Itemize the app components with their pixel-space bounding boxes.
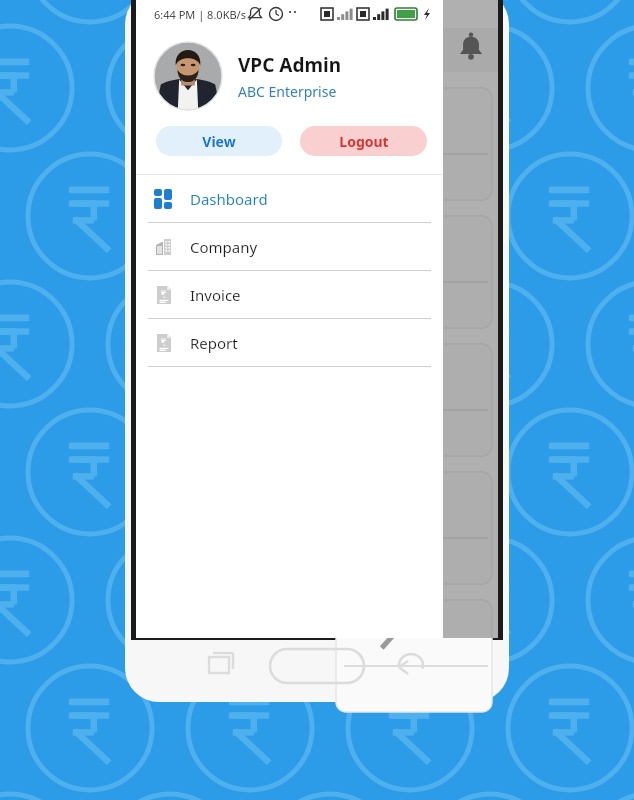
staticText: Logout xyxy=(339,132,389,151)
staticText: Invoice xyxy=(190,285,241,305)
staticText: ABC Enterprise xyxy=(238,82,337,101)
staticText: Report xyxy=(190,333,238,353)
button[interactable]: Report xyxy=(136,319,443,366)
staticText: Company xyxy=(190,237,258,257)
button[interactable]: Logout xyxy=(300,126,427,156)
button[interactable]: Company xyxy=(136,223,443,270)
button[interactable]: Invoice xyxy=(136,271,443,318)
staticText: VPC Admin xyxy=(238,52,341,78)
button[interactable]: View xyxy=(156,126,282,156)
staticText: Dashboard xyxy=(190,189,268,209)
staticText: 6:44 PM | 8.0KB/s xyxy=(154,7,246,22)
button[interactable]: Dashboard xyxy=(136,175,443,222)
staticText: View xyxy=(202,132,236,151)
